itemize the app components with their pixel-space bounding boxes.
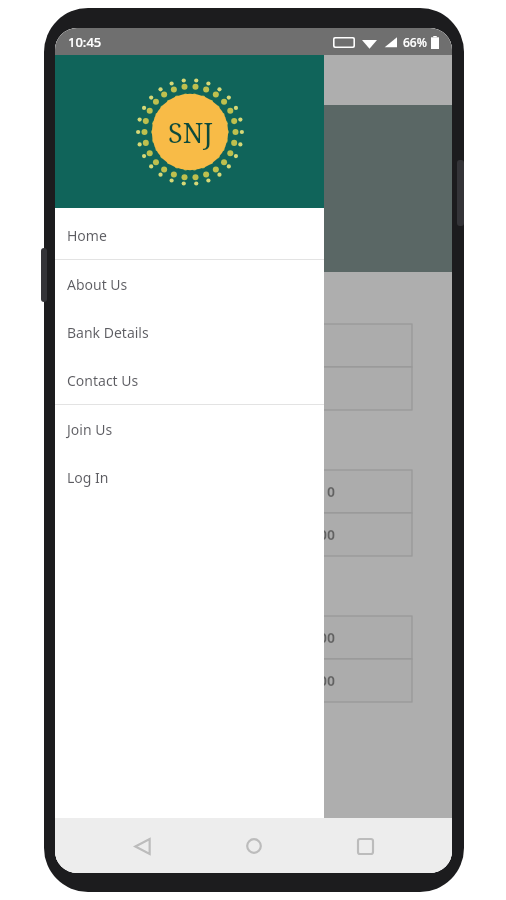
button[interactable]: Contact Us xyxy=(55,356,324,404)
staticText: Log In xyxy=(67,468,109,487)
button[interactable]: About Us xyxy=(55,260,324,308)
staticText: 66% xyxy=(403,34,427,50)
button[interactable]: Recent apps xyxy=(341,822,389,870)
staticText: 00 xyxy=(319,525,336,544)
button[interactable]: Home xyxy=(230,822,278,870)
staticText: Join Us xyxy=(67,420,113,439)
staticText: 00 xyxy=(319,671,336,690)
button[interactable]: Log In xyxy=(55,453,324,501)
staticText: Bank Details xyxy=(67,323,149,342)
staticText: About Us xyxy=(67,275,128,294)
staticText: Contact Us xyxy=(67,371,139,390)
button[interactable]: Back xyxy=(118,822,166,870)
staticText: SNJ xyxy=(168,114,213,151)
button[interactable]: Bank Details xyxy=(55,308,324,356)
staticText: Home xyxy=(67,226,107,245)
staticText: 00 xyxy=(319,628,336,647)
staticText: 10:45 xyxy=(68,33,102,51)
button[interactable]: Home xyxy=(55,211,324,259)
staticText: 0 xyxy=(327,482,336,501)
button[interactable]: Join Us xyxy=(55,405,324,453)
